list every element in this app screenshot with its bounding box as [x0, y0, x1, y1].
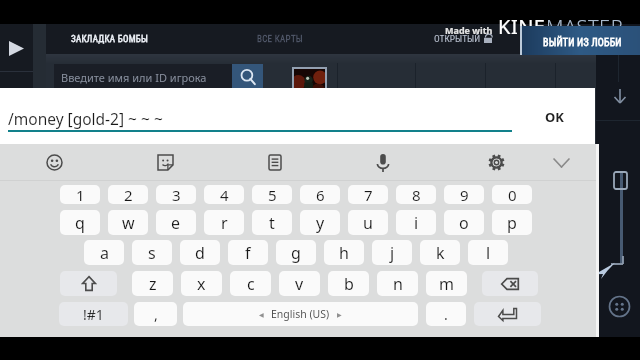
button[interactable]: Voice input — [368, 148, 397, 177]
staticText: l — [486, 242, 491, 264]
button[interactable]: o — [444, 210, 484, 235]
staticText: f — [245, 242, 251, 264]
staticText: w — [122, 212, 135, 234]
button[interactable]: Enter — [474, 302, 541, 326]
staticText: c — [247, 273, 255, 295]
staticText: m — [439, 273, 454, 295]
staticText: t — [269, 212, 275, 234]
staticText: r — [221, 212, 228, 234]
button[interactable]: a — [84, 240, 124, 265]
button[interactable]: 3 — [156, 185, 196, 204]
staticText: OK — [545, 108, 564, 126]
staticText: !#1 — [83, 305, 104, 324]
button[interactable]: Options — [608, 295, 631, 318]
staticText: z — [149, 273, 157, 295]
button[interactable]: k — [420, 240, 460, 265]
button[interactable]: Search — [232, 64, 263, 90]
button[interactable]: 7 — [348, 185, 388, 204]
button[interactable]: Backspace — [482, 271, 538, 296]
button[interactable]: b — [328, 271, 369, 296]
staticText: 8 — [412, 185, 421, 204]
button[interactable]: Stickers — [151, 148, 180, 177]
button[interactable]: w — [108, 210, 148, 235]
staticText: 2 — [124, 185, 133, 204]
button[interactable]: OK — [531, 105, 577, 129]
staticText: ВЫЙТИ ИЗ ЛОББИ — [543, 37, 622, 49]
button[interactable]: Введите имя или ID игрока — [54, 64, 232, 90]
button[interactable]: y — [300, 210, 340, 235]
staticText: u — [363, 212, 373, 234]
staticText: q — [75, 212, 85, 234]
button[interactable]: 4 — [204, 185, 244, 204]
staticText: 9 — [460, 185, 469, 204]
staticText: 1 — [76, 185, 85, 204]
button[interactable]: l — [468, 240, 508, 265]
staticText: x — [197, 273, 206, 295]
button[interactable]: Hide keyboard — [547, 148, 576, 177]
button[interactable]: Scroll down — [613, 89, 627, 103]
button[interactable]: g — [276, 240, 316, 265]
button[interactable]: f — [228, 240, 268, 265]
staticText: n — [393, 273, 403, 295]
staticText: , — [154, 305, 158, 324]
button[interactable]: 6 — [300, 185, 340, 204]
button[interactable]: i — [396, 210, 436, 235]
button[interactable]: e — [156, 210, 196, 235]
button[interactable]: p — [492, 210, 532, 235]
button[interactable]: v — [279, 271, 320, 296]
button[interactable]: n — [377, 271, 418, 296]
button[interactable]: ОТКРЫТЫЙ — [434, 33, 481, 44]
staticText: d — [195, 242, 205, 264]
staticText: p — [507, 212, 517, 234]
button[interactable]: r — [204, 210, 244, 235]
staticText: Введите имя или ID игрока — [61, 70, 207, 85]
staticText: e — [171, 212, 181, 234]
button[interactable]: t — [252, 210, 292, 235]
button[interactable]: m — [426, 271, 467, 296]
button[interactable]: ВСЕ КАРТЫ — [257, 34, 303, 45]
button[interactable]: 2 — [108, 185, 148, 204]
button[interactable]: ◀ — [183, 302, 418, 326]
button[interactable] — [294, 69, 325, 95]
button[interactable]: q — [60, 210, 100, 235]
other: Enter — [497, 307, 518, 322]
staticText: Made with — [445, 24, 493, 36]
button[interactable]: Shift — [60, 271, 117, 296]
button[interactable]: j — [372, 240, 412, 265]
staticText: i — [414, 212, 419, 234]
button[interactable]: c — [230, 271, 271, 296]
button[interactable]: 1 — [60, 185, 100, 204]
button[interactable]: u — [348, 210, 388, 235]
button[interactable]: Emoji — [40, 148, 69, 177]
button[interactable]: d — [180, 240, 220, 265]
staticText: 0 — [508, 185, 517, 204]
staticText: y — [316, 212, 325, 234]
button[interactable]: . — [426, 302, 466, 326]
staticText: v — [295, 273, 304, 295]
staticText: b — [344, 273, 354, 295]
button[interactable]: !#1 — [59, 302, 128, 326]
button[interactable]: Play — [9, 41, 24, 56]
staticText: . — [444, 305, 448, 324]
staticText: English (US) — [271, 307, 330, 321]
button[interactable]: 9 — [444, 185, 484, 204]
button[interactable]: s — [132, 240, 172, 265]
button[interactable]: x — [181, 271, 222, 296]
button[interactable]: Clipboard — [260, 148, 289, 177]
button[interactable]: h — [324, 240, 364, 265]
button[interactable]: Keyboard settings — [482, 148, 511, 177]
button[interactable]: ЗАКЛАДКА БОМБЫ — [71, 34, 149, 45]
button[interactable]: Send — [595, 262, 615, 279]
staticText: 6 — [316, 185, 325, 204]
staticText: 4 — [220, 185, 229, 204]
button[interactable]: 8 — [396, 185, 436, 204]
staticText: a — [100, 242, 109, 264]
button[interactable]: , — [134, 302, 177, 326]
button[interactable]: ВЫЙТИ ИЗ ЛОББИ — [520, 26, 640, 55]
button[interactable]: 0 — [492, 185, 532, 204]
staticText: /money [gold-2] ~ ~ ~ — [8, 108, 163, 129]
button[interactable]: z — [132, 271, 173, 296]
other: Shift — [81, 275, 97, 292]
other: Backspace — [500, 277, 520, 291]
button[interactable]: 5 — [252, 185, 292, 204]
